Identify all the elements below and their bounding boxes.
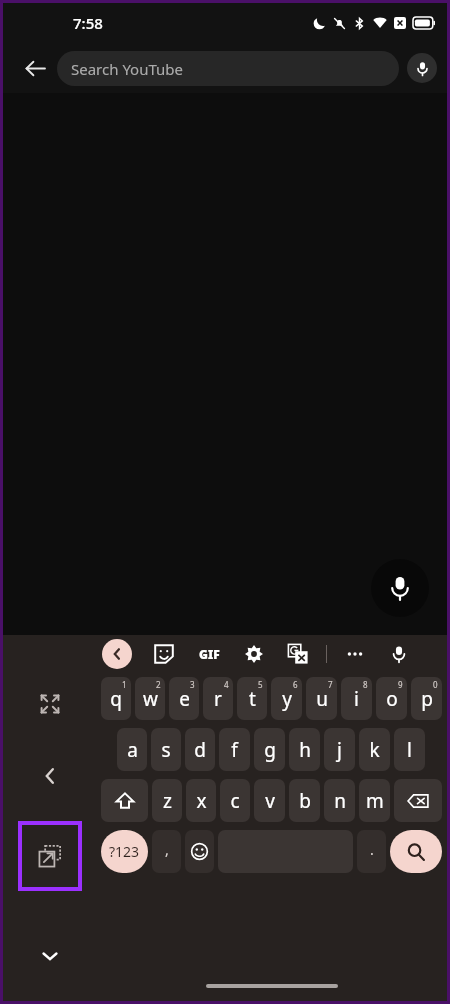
button[interactable]: ,	[152, 830, 181, 873]
staticText: e	[179, 686, 190, 712]
staticText: ?123	[109, 842, 140, 861]
button[interactable]: Voice search	[371, 559, 429, 617]
button[interactable]: ?123	[101, 830, 148, 873]
staticText: 5	[258, 679, 263, 690]
button[interactable]: Hide keyboard	[33, 939, 67, 973]
button[interactable]: q	[101, 677, 131, 720]
staticText: 2	[156, 679, 161, 690]
staticText: u	[316, 686, 328, 712]
staticText: m	[366, 788, 384, 814]
button[interactable]: More options	[341, 640, 369, 668]
button[interactable]: y	[271, 677, 302, 720]
button[interactable]: t	[237, 677, 267, 720]
button[interactable]: Stickers	[150, 640, 178, 668]
button[interactable]: a	[117, 728, 147, 771]
staticText: 1	[122, 679, 127, 690]
button[interactable]: p	[411, 677, 442, 720]
button[interactable]: Back	[13, 46, 57, 90]
button[interactable]: b	[289, 779, 320, 822]
button[interactable]: .	[357, 830, 386, 873]
button[interactable]: l	[394, 728, 425, 771]
button[interactable]: n	[324, 779, 355, 822]
staticText: 0	[433, 679, 438, 690]
staticText: 3	[190, 679, 195, 690]
staticText: r	[214, 686, 222, 712]
button[interactable]: k	[359, 728, 390, 771]
button[interactable]: u	[306, 677, 337, 720]
staticText: 7:58	[73, 13, 103, 33]
button[interactable]: s	[151, 728, 181, 771]
button[interactable]: w	[135, 677, 165, 720]
button[interactable]: r	[203, 677, 233, 720]
staticText: 4	[224, 679, 229, 690]
staticText: 7	[328, 679, 333, 690]
button[interactable]: o	[376, 677, 407, 720]
staticText: v	[265, 788, 275, 814]
button[interactable]: Previous	[33, 759, 67, 793]
button[interactable]: f	[219, 728, 250, 771]
button[interactable]: Backspace	[394, 779, 442, 822]
staticText: k	[369, 737, 380, 763]
button[interactable]: d	[185, 728, 215, 771]
staticText: j	[337, 737, 342, 763]
staticText: c	[230, 788, 240, 814]
staticText: h	[299, 737, 311, 763]
staticText: z	[163, 788, 172, 814]
staticText: p	[421, 686, 433, 712]
button[interactable]: z	[152, 779, 182, 822]
button[interactable]: Translate	[284, 640, 312, 668]
button[interactable]: i	[341, 677, 372, 720]
staticText: d	[194, 737, 206, 763]
staticText: x	[196, 788, 207, 814]
button[interactable]: Expand	[33, 687, 67, 721]
staticText: s	[161, 737, 171, 763]
staticText: GIF	[199, 646, 220, 662]
button[interactable]: Pop out keyboard	[18, 821, 82, 891]
button[interactable]: Search	[390, 830, 442, 873]
button[interactable]: Search YouTube	[57, 51, 399, 86]
button[interactable]: g	[254, 728, 285, 771]
staticText: 9	[398, 679, 403, 690]
button[interactable]: e	[169, 677, 199, 720]
staticText: ,	[165, 840, 169, 859]
staticText: f	[231, 737, 238, 763]
staticText: 8	[363, 679, 368, 690]
button[interactable]: GIF	[194, 639, 224, 669]
button[interactable]: Settings	[240, 640, 268, 668]
button[interactable]: c	[220, 779, 250, 822]
staticText: g	[264, 737, 276, 763]
staticText: n	[334, 788, 346, 814]
button[interactable]: j	[324, 728, 355, 771]
button[interactable]: Voice search	[407, 53, 437, 83]
staticText: o	[386, 686, 398, 712]
staticText: b	[299, 788, 311, 814]
button[interactable]: Close toolbar	[102, 639, 132, 669]
staticText: t	[249, 686, 256, 712]
button[interactable]: h	[289, 728, 320, 771]
staticText: .	[370, 840, 374, 859]
staticText: a	[127, 737, 138, 763]
staticText: l	[407, 737, 412, 763]
staticText: i	[354, 686, 359, 712]
staticText: Search YouTube	[71, 59, 184, 79]
staticText: y	[282, 686, 292, 712]
button[interactable]: Voice input	[385, 640, 413, 668]
button[interactable]: m	[359, 779, 390, 822]
button[interactable]: Emoji	[185, 830, 214, 873]
staticText: q	[110, 686, 122, 712]
button[interactable]: x	[186, 779, 216, 822]
staticText: 6	[293, 679, 298, 690]
button[interactable]: v	[254, 779, 285, 822]
button[interactable]: Shift	[101, 779, 148, 822]
staticText: w	[143, 686, 158, 712]
